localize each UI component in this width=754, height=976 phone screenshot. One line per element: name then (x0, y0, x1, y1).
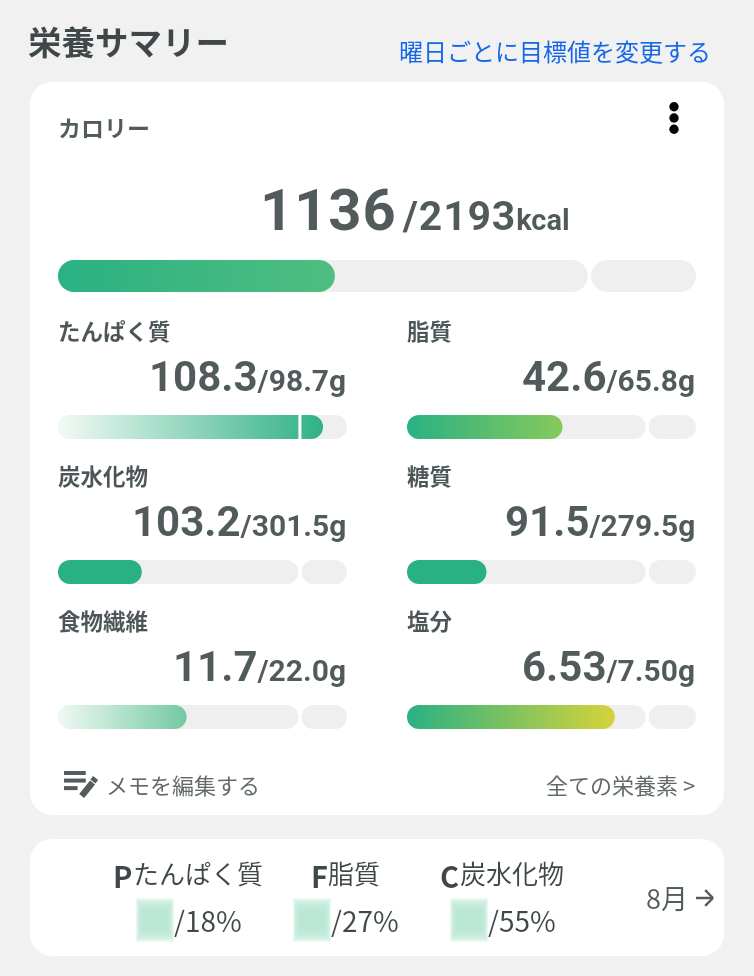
staticText: 脂質 (407, 314, 453, 347)
staticText: 栄養サマリー (28, 16, 229, 65)
staticText: 108.3/98.7g (149, 352, 347, 401)
staticText: /18% (174, 900, 242, 941)
staticText: カロリー (58, 110, 150, 143)
button[interactable]: 全ての栄養素 > (546, 768, 696, 800)
staticText: 8月 (646, 878, 688, 917)
staticText: 91.5/279.5g (505, 497, 696, 546)
staticText: たんぱく質 (58, 314, 171, 347)
staticText: /27% (331, 900, 399, 941)
staticText: P (113, 854, 133, 896)
staticText: 6.53/7.50g (522, 642, 696, 691)
staticText: 1136 /2193kcal (260, 176, 570, 244)
staticText: たんぱく質 (133, 854, 264, 892)
staticText: 103.2/301.5g (132, 497, 347, 546)
staticText: 炭水化物 (58, 459, 149, 492)
staticText: 42.6/65.8g (522, 352, 696, 401)
staticText: 脂質 (328, 854, 381, 892)
staticText: 曜日ごとに目標値を変更する (399, 33, 711, 68)
staticText: メモを編集する (106, 768, 261, 800)
button[interactable]: 8月 (646, 878, 713, 917)
staticText: 糖質 (407, 459, 453, 492)
button[interactable]: 曜日ごとに目標値を変更する (399, 33, 711, 68)
staticText: /55% (488, 900, 556, 941)
staticText: 全ての栄養素 > (546, 768, 696, 800)
staticText: 炭水化物 (460, 854, 565, 892)
button[interactable]: More options (654, 98, 694, 138)
staticText: 11.7/22.0g (173, 642, 347, 691)
button[interactable]: メモを編集する (58, 768, 261, 800)
staticText: F (311, 854, 328, 896)
staticText: 食物繊維 (58, 604, 149, 637)
staticText: 塩分 (407, 604, 453, 637)
staticText: C (440, 854, 460, 896)
